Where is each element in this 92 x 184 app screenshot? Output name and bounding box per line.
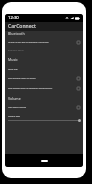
staticText: CarConnect bbox=[8, 23, 36, 30]
staticText: Bluetooth bbox=[8, 31, 25, 36]
staticText: Launch music app on Bluetooth connection bbox=[8, 41, 75, 44]
staticText: Music app bbox=[8, 68, 80, 71]
staticText: Bluetooth device bbox=[8, 49, 80, 52]
button[interactable]: Auto adjust volume bbox=[5, 103, 83, 112]
button[interactable]: Launch music app on Bluetooth connection bbox=[5, 38, 83, 47]
button[interactable]: Bluetooth device bbox=[5, 46, 83, 55]
staticText: Stop playing music on Bluetooth disconne… bbox=[8, 87, 75, 90]
staticText: Volume level bbox=[8, 115, 80, 118]
staticText: Music bbox=[8, 57, 18, 62]
button[interactable]: Start playing music on launch bbox=[5, 74, 83, 83]
other: Home bbox=[41, 160, 48, 162]
staticText: Start playing music on launch bbox=[8, 77, 75, 80]
staticText: 12:30 bbox=[8, 15, 19, 21]
button[interactable]: Stop playing music on Bluetooth disconne… bbox=[5, 84, 83, 93]
button[interactable]: Music app bbox=[5, 65, 83, 74]
staticText: Auto adjust volume bbox=[8, 106, 75, 109]
staticText: Volume bbox=[8, 96, 21, 101]
button[interactable]: Volume level bbox=[5, 112, 83, 121]
